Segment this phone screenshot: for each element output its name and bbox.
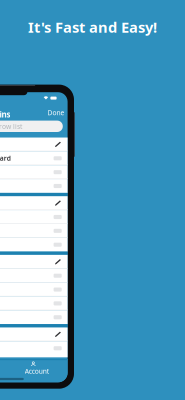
- button[interactable]: Edit item: [0, 327, 68, 341]
- button[interactable]: [0, 269, 68, 283]
- staticText: Logins: [0, 109, 10, 120]
- button[interactable]: [0, 283, 68, 296]
- button[interactable]: [0, 238, 68, 252]
- button[interactable]: Credit Card: [0, 151, 68, 165]
- button[interactable]: [0, 165, 68, 179]
- staticText: It's Fast and Easy!: [28, 17, 157, 37]
- button[interactable]: Done: [43, 109, 65, 117]
- button[interactable]: Type to narrow list: [0, 121, 63, 132]
- staticText: Done: [48, 108, 65, 117]
- staticText: Account: [25, 367, 49, 376]
- button[interactable]: [0, 296, 68, 310]
- button[interactable]: Account: [16, 360, 58, 374]
- button[interactable]: Edit item: [0, 137, 68, 151]
- button[interactable]: [0, 179, 68, 193]
- staticText: Credit Card: [0, 154, 11, 163]
- button[interactable]: Edit item: [0, 255, 68, 269]
- staticText: Type to narrow list: [0, 122, 22, 131]
- button[interactable]: [0, 224, 68, 238]
- button[interactable]: [0, 341, 68, 357]
- button[interactable]: Edit item: [0, 196, 68, 210]
- button[interactable]: [0, 210, 68, 224]
- button[interactable]: [0, 310, 68, 324]
